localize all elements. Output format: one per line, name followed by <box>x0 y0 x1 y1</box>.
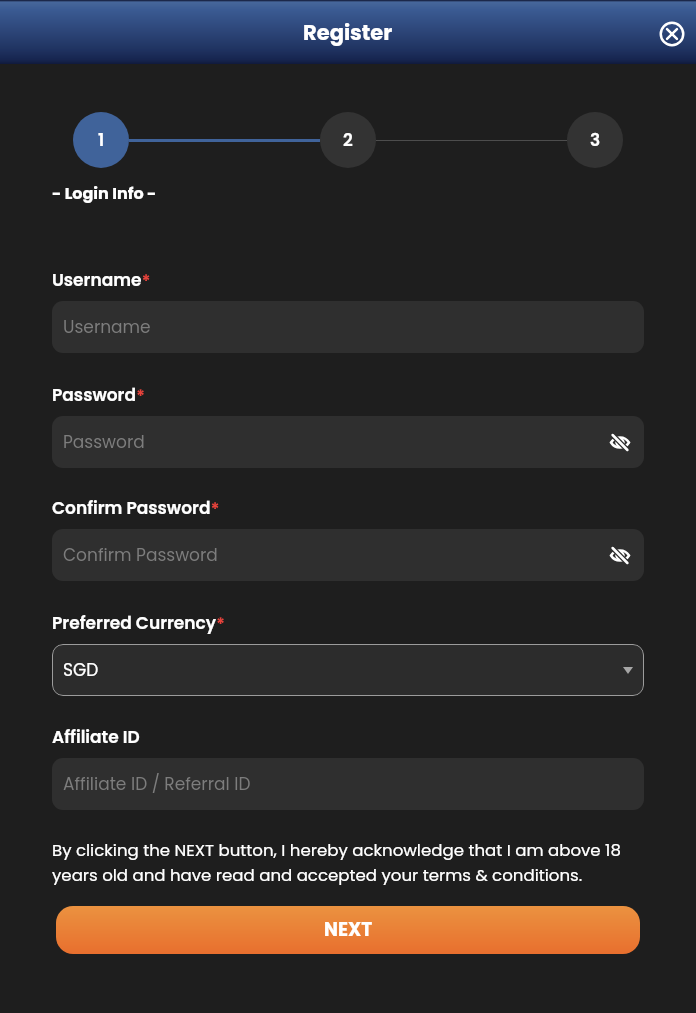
button[interactable]: NEXT <box>56 906 640 954</box>
staticText: 2 <box>343 128 353 152</box>
staticText: Register <box>303 18 393 47</box>
staticText: Username* <box>52 268 151 293</box>
button[interactable]: Show password <box>605 540 635 570</box>
staticText: NEXT <box>324 917 373 943</box>
staticText: Password* <box>52 383 146 408</box>
staticText: 1 <box>98 128 105 152</box>
staticText: Username <box>63 315 151 339</box>
button[interactable]: 1 <box>73 112 129 168</box>
button[interactable]: Close <box>652 14 692 54</box>
button[interactable]: SGD <box>52 644 644 696</box>
staticText: SGD <box>63 658 99 682</box>
button[interactable]: Confirm Password <box>52 529 644 581</box>
staticText: Affiliate ID / Referral ID <box>63 772 251 796</box>
button[interactable]: Affiliate ID / Referral ID <box>52 758 644 810</box>
staticText: By clicking the NEXT button, I hereby ac… <box>52 839 644 887</box>
staticText: Confirm Password* <box>52 496 220 521</box>
button[interactable]: 3 <box>567 112 623 168</box>
staticText: Confirm Password <box>63 543 218 567</box>
staticText: Password <box>63 430 145 454</box>
staticText: Affiliate ID <box>52 725 140 749</box>
button[interactable]: Username <box>52 301 644 353</box>
staticText: 3 <box>590 128 601 152</box>
button[interactable]: Password <box>52 416 644 468</box>
button[interactable]: Show password <box>605 427 635 457</box>
staticText: - Login Info - <box>52 182 157 204</box>
staticText: Preferred Currency* <box>52 611 226 636</box>
button[interactable]: 2 <box>320 112 376 168</box>
